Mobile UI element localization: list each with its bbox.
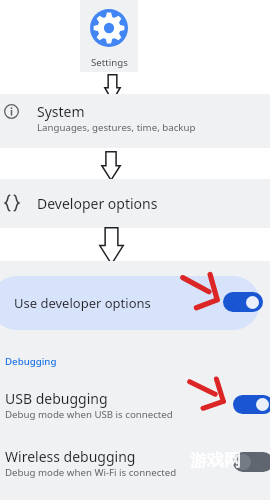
staticText: Developer options <box>37 194 158 213</box>
button[interactable]: USB debugging <box>0 378 270 428</box>
staticText: USB debugging <box>5 389 108 408</box>
button[interactable]: Settings <box>80 0 138 72</box>
staticText: Settings <box>91 56 128 69</box>
staticText: Debug mode when Wi-Fi is connected <box>5 466 177 479</box>
staticText: Debug mode when USB is connected <box>5 408 173 421</box>
staticText: Wireless debugging <box>5 447 136 466</box>
staticText: Languages, gestures, time, backup <box>37 121 196 134</box>
button[interactable]: Toggle on <box>223 292 263 312</box>
button[interactable]: Use developer options <box>0 276 260 330</box>
staticText: Use developer options <box>14 294 151 312</box>
button[interactable]: Toggle on <box>233 395 270 414</box>
staticText: 游戏网 <box>190 450 266 480</box>
button[interactable]: System <box>0 94 270 148</box>
button[interactable]: Wireless debugging <box>0 436 270 486</box>
staticText: Debugging <box>5 355 57 368</box>
button[interactable]: Wireless debugging toggle <box>233 452 270 472</box>
button[interactable]: Developer options <box>0 179 270 228</box>
staticText: System <box>37 102 85 121</box>
